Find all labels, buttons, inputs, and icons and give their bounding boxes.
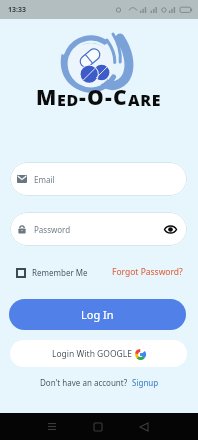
staticText: C (113, 83, 128, 112)
staticText: Remember Me (32, 267, 88, 278)
button[interactable]: Home (75, 413, 120, 440)
staticText: - (79, 83, 87, 112)
staticText: 13:33 (8, 5, 26, 15)
button[interactable]: Show password (163, 222, 177, 236)
staticText: Password (34, 224, 71, 235)
button[interactable]: Log In (9, 299, 186, 330)
staticText: Don't have an account? (40, 377, 128, 388)
staticText: M (36, 83, 57, 112)
button[interactable]: Email (10, 162, 187, 196)
button[interactable]: Login With GOOGLE (10, 340, 187, 367)
button[interactable]: Remember Me (16, 264, 88, 281)
button[interactable]: Forgot Password? (112, 263, 183, 281)
staticText: Log In (81, 307, 114, 322)
staticText: Email (34, 174, 55, 185)
staticText: ED (57, 89, 79, 111)
staticText: Forgot Password? (112, 266, 183, 278)
button[interactable]: Signup (132, 377, 159, 388)
button[interactable]: Recent apps (29, 413, 74, 440)
button[interactable]: Password (10, 212, 187, 246)
staticText: O (87, 83, 105, 112)
staticText: Signup (132, 377, 159, 388)
staticText: - (105, 83, 113, 112)
staticText: ARE (128, 89, 162, 111)
button[interactable]: Back (121, 413, 166, 440)
staticText: Login With GOOGLE (52, 348, 132, 360)
